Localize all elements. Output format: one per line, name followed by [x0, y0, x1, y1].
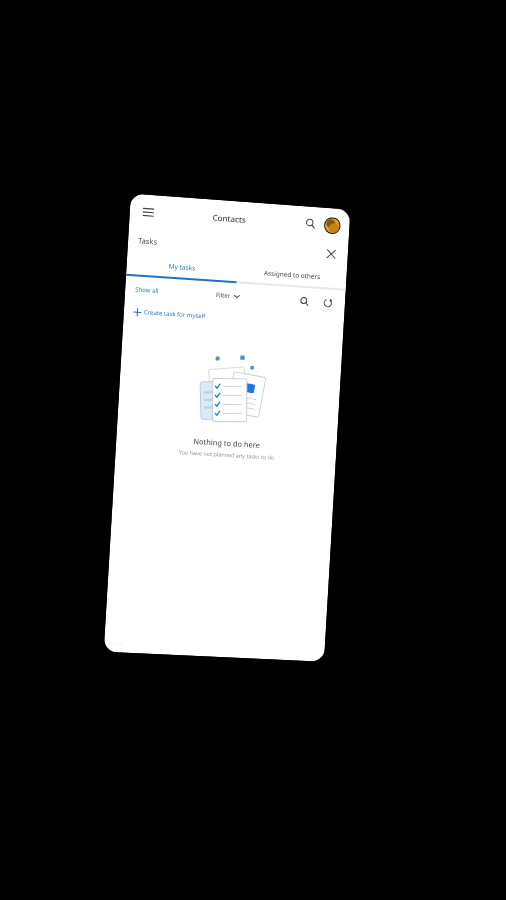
button[interactable]: Create task for myself — [123, 302, 344, 334]
staticText: You have not planned any tasks to do — [179, 448, 275, 461]
button[interactable]: Search — [301, 214, 320, 233]
button[interactable]: Close — [323, 245, 339, 262]
button[interactable]: Filter — [216, 291, 240, 301]
button[interactable]: Open navigation menu — [138, 202, 157, 221]
staticText: Create task for myself — [144, 308, 206, 320]
staticText: Nothing to do here — [193, 436, 261, 450]
staticText: My tasks — [168, 262, 196, 272]
button[interactable]: My tasks — [126, 252, 238, 281]
button[interactable]: Show all — [135, 285, 159, 295]
staticText: Contacts — [212, 211, 247, 225]
staticText: Assigned to others — [264, 268, 321, 281]
staticText: Sony — [111, 640, 123, 647]
button[interactable]: Assigned to others — [237, 259, 347, 289]
button[interactable]: Account — [325, 218, 340, 234]
staticText: Filter — [216, 291, 231, 300]
staticText: Show all — [135, 285, 159, 295]
button[interactable]: Refresh — [319, 294, 336, 311]
staticText: Tasks — [138, 235, 157, 247]
button[interactable]: Search tasks — [295, 292, 312, 309]
